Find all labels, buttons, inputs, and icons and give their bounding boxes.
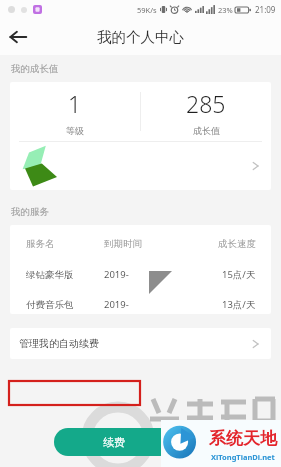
staticText: 15点/天 [222,268,256,281]
staticText: 等级 [66,125,84,136]
staticText: 绿钻豪华版 [26,269,104,281]
staticText: 23% [218,5,233,15]
staticText: 我的成长值 [11,63,59,75]
staticText: 285 [186,88,226,119]
staticText: 续费 [103,435,125,449]
staticText: 21:09 [255,4,276,15]
staticText: 服务名 [26,238,104,250]
staticText: 2019- [104,298,222,311]
staticText: 到期时间 [104,238,218,250]
staticText: 系统天地 [209,428,277,449]
staticText: 我的服务 [11,206,49,218]
staticText: 成长速度 [218,238,256,250]
button[interactable]: 续费 [54,428,174,456]
button[interactable]: Back [0,19,36,55]
staticText: 成长值 [193,125,220,136]
staticText: XiTongTianDi.net [211,452,275,462]
button[interactable]: 管理我的自动续费 [10,328,271,359]
staticText: 13点/天 [222,298,256,311]
staticText: 2019- [104,268,222,281]
staticText: 59K/s [137,5,157,15]
staticText: 1 [68,88,82,119]
staticText: 管理我的自动续费 [19,337,99,350]
button[interactable] [10,142,271,190]
staticText: 我的个人中心 [97,28,184,46]
staticText: 付费音乐包 [26,299,104,311]
